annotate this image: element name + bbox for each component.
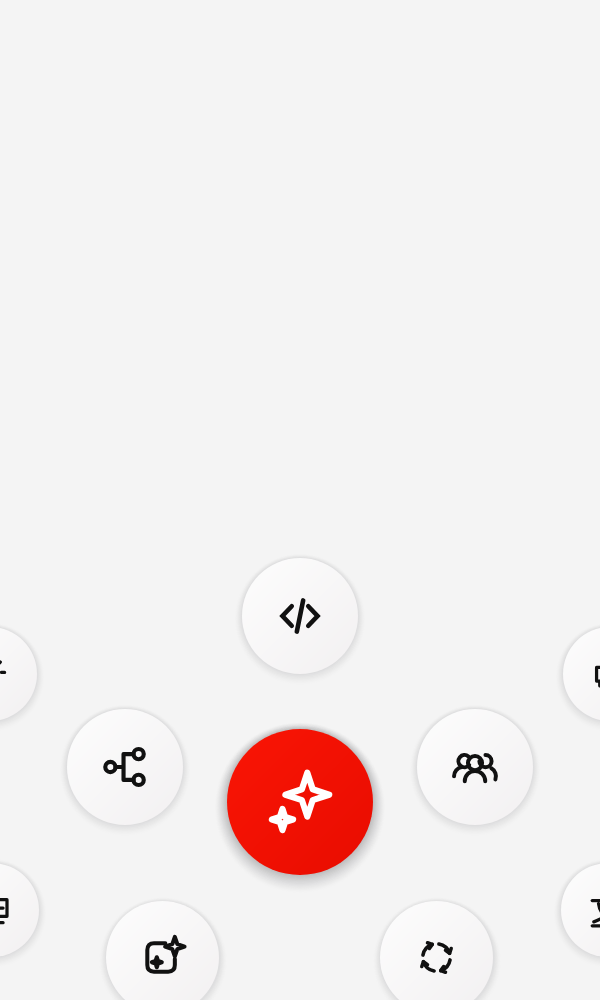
button[interactable]: Chat [563, 627, 600, 721]
button[interactable]: Code [242, 558, 358, 674]
button[interactable]: Ideas [0, 627, 37, 721]
button[interactable]: Sync [380, 901, 493, 1000]
button[interactable]: Share nodes [67, 709, 183, 825]
button[interactable]: Translate [561, 863, 600, 957]
button[interactable]: Analytics [0, 863, 39, 957]
button[interactable]: People [417, 709, 533, 825]
button[interactable]: Magic image [106, 901, 219, 1000]
button[interactable]: AI assistant [227, 729, 373, 875]
